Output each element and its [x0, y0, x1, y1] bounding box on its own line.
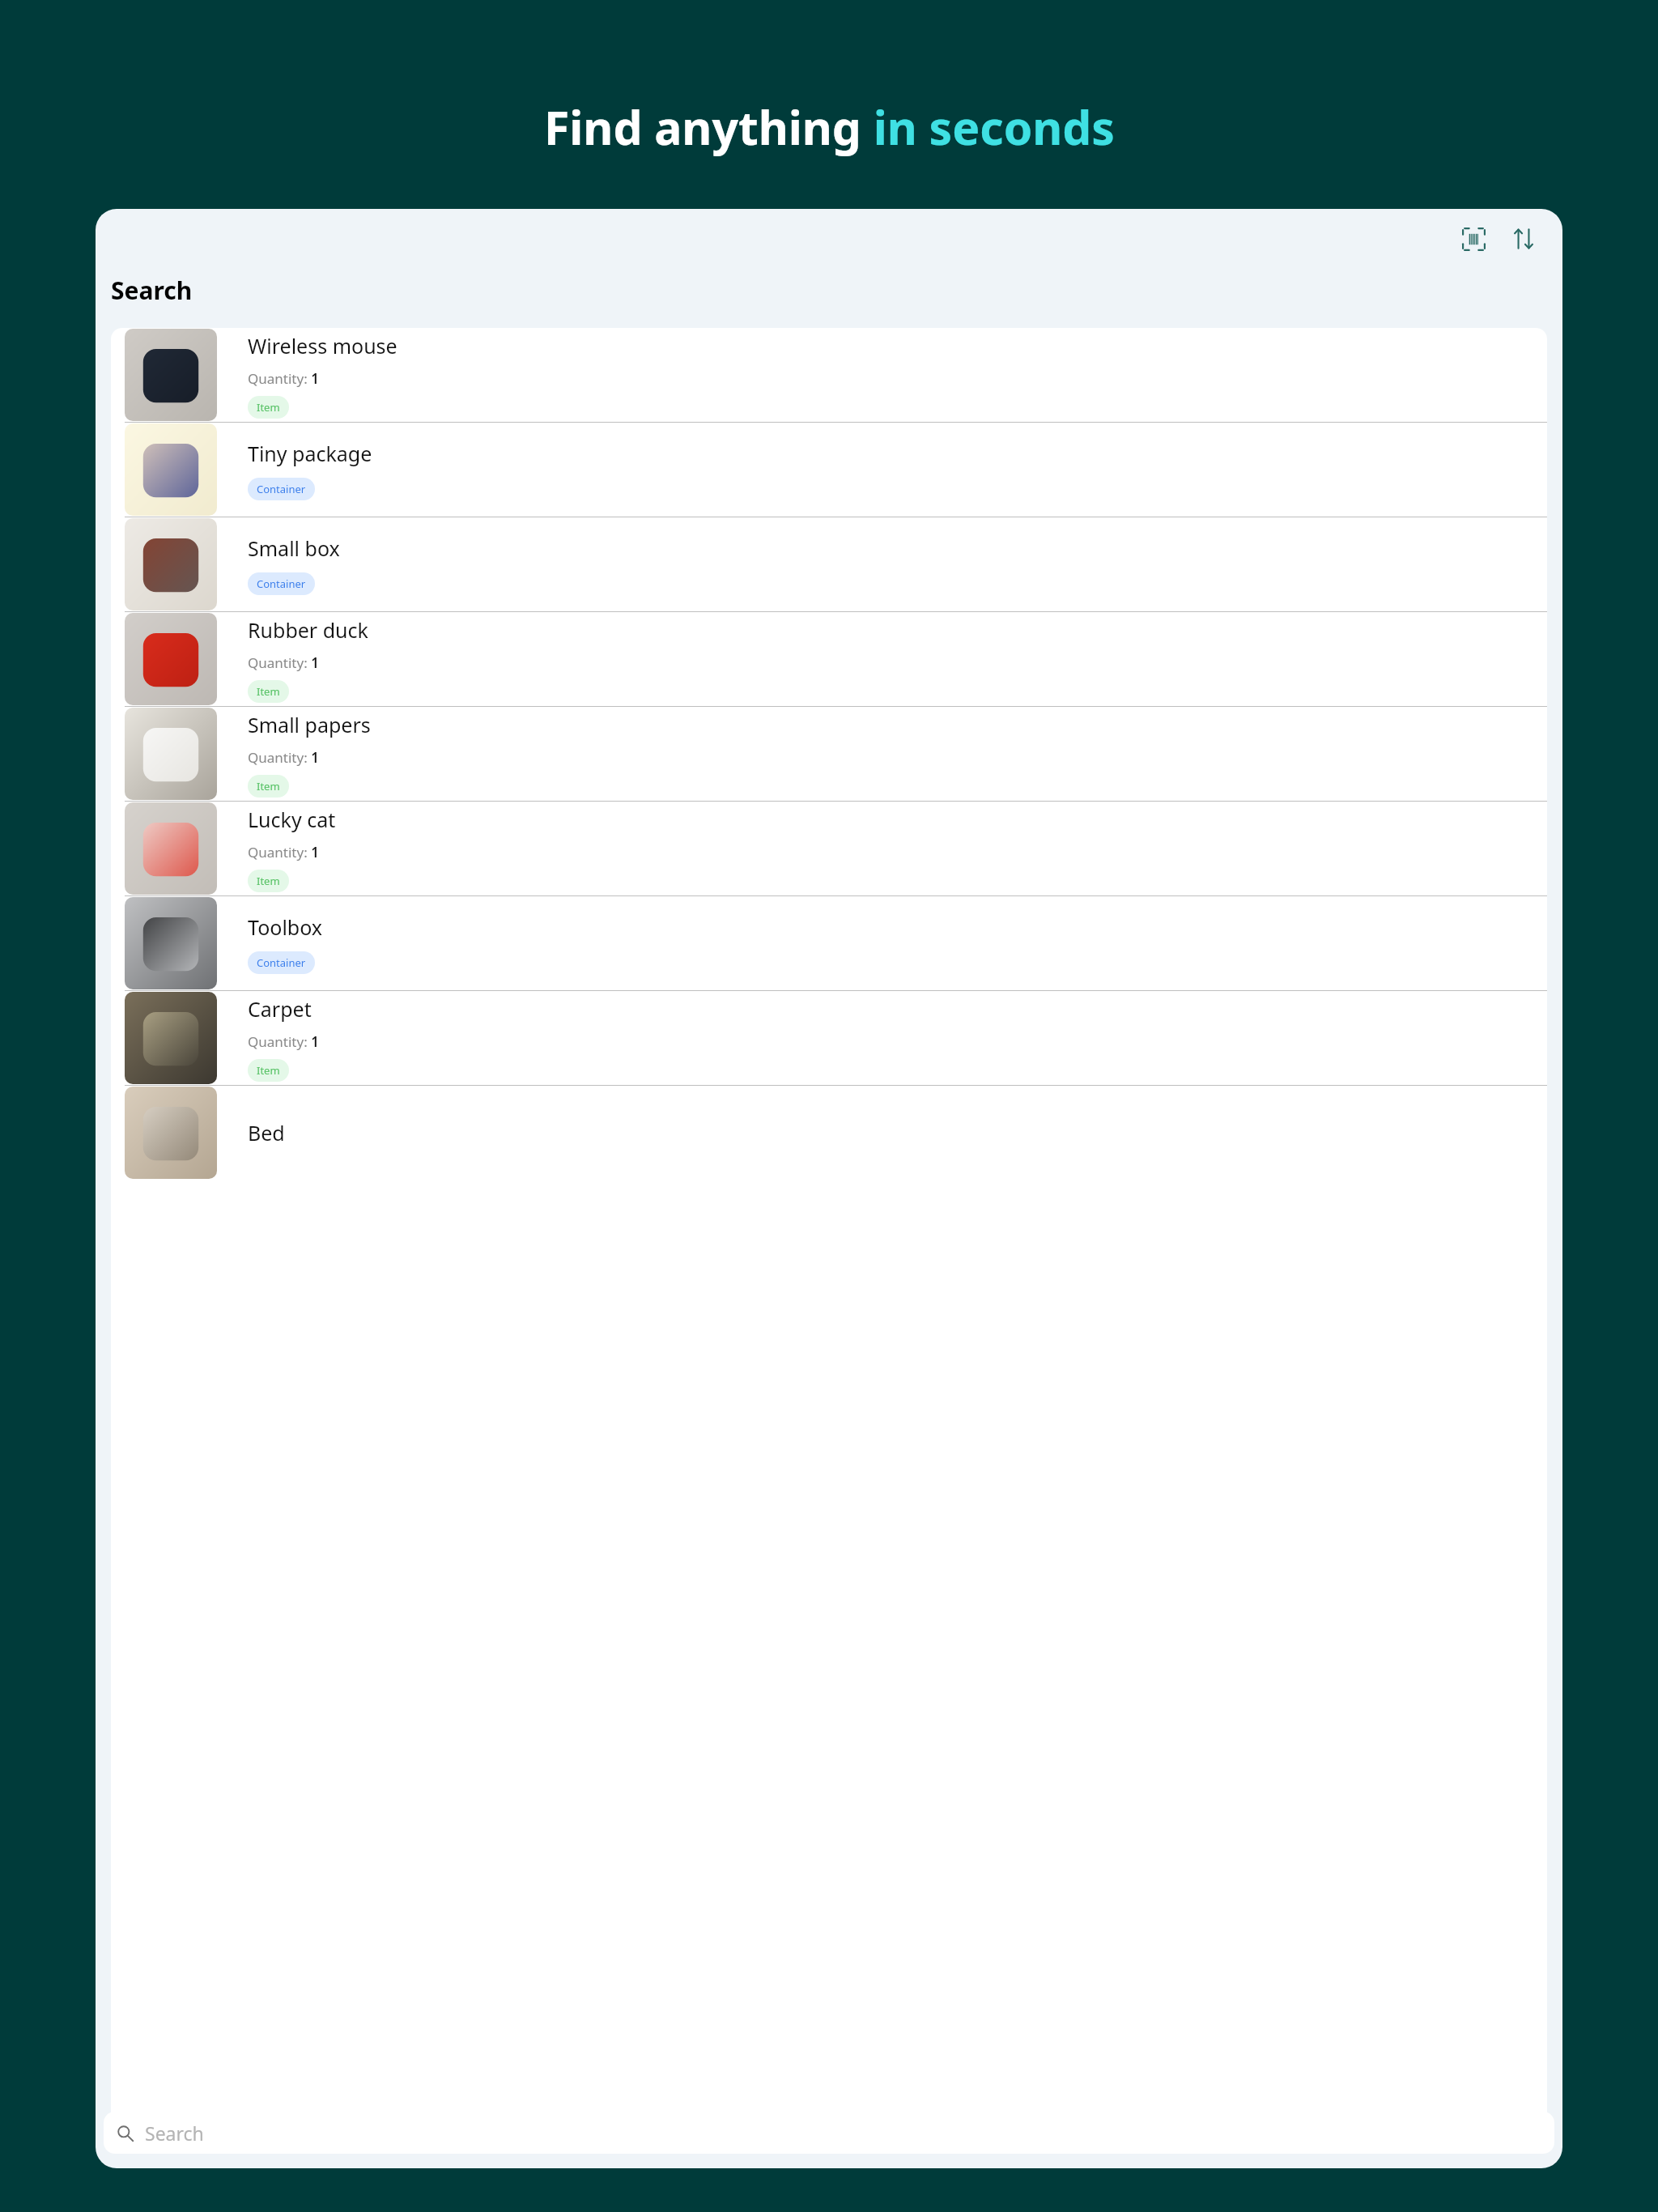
staticText: Carpet: [248, 995, 312, 1023]
button[interactable]: Container: [248, 951, 315, 974]
staticText: Small box: [248, 534, 340, 562]
button[interactable]: Carpet: [111, 991, 1547, 1085]
staticText: Quantity: 1: [248, 653, 319, 672]
staticText: Rubber duck: [248, 616, 368, 644]
button[interactable]: Bed: [111, 1086, 1547, 1180]
staticText: Item: [257, 1063, 280, 1078]
button[interactable]: Item: [248, 1059, 289, 1082]
staticText: Small papers: [248, 711, 371, 738]
staticText: Quantity: 1: [248, 748, 319, 767]
button[interactable]: Rubber duck: [111, 612, 1547, 706]
staticText: Item: [257, 684, 280, 699]
staticText: Search: [145, 2121, 204, 2146]
staticText: Item: [257, 400, 280, 415]
button[interactable]: Item: [248, 775, 289, 798]
staticText: Container: [257, 576, 306, 591]
button[interactable]: Tiny package: [111, 423, 1547, 517]
staticText: Find anything in seconds: [544, 96, 1115, 159]
staticText: Wireless mouse: [248, 332, 397, 359]
staticText: Bed: [248, 1119, 285, 1146]
staticText: Item: [257, 779, 280, 793]
button[interactable]: Wireless mouse: [111, 328, 1547, 422]
staticText: Quantity: 1: [248, 369, 319, 388]
staticText: Search: [111, 274, 193, 307]
button[interactable]: Container: [248, 478, 315, 500]
staticText: Quantity: 1: [248, 843, 319, 861]
staticText: Lucky cat: [248, 806, 336, 833]
staticText: Container: [257, 955, 306, 970]
staticText: Quantity: 1: [248, 1032, 319, 1051]
button[interactable]: Item: [248, 680, 289, 703]
button[interactable]: Small box: [111, 517, 1547, 611]
staticText: Container: [257, 482, 306, 496]
button[interactable]: Lucky cat: [111, 802, 1547, 895]
button[interactable]: Toolbox: [111, 896, 1547, 990]
staticText: Item: [257, 874, 280, 888]
button[interactable]: Item: [248, 870, 289, 892]
button[interactable]: Item: [248, 396, 289, 419]
button[interactable]: Sort: [1503, 218, 1545, 260]
button[interactable]: Small papers: [111, 707, 1547, 801]
button[interactable]: Container: [248, 572, 315, 595]
button[interactable]: Scan barcode: [1452, 218, 1494, 260]
staticText: Tiny package: [248, 440, 372, 467]
staticText: Toolbox: [248, 913, 323, 941]
button[interactable]: Search: [104, 2112, 1554, 2154]
